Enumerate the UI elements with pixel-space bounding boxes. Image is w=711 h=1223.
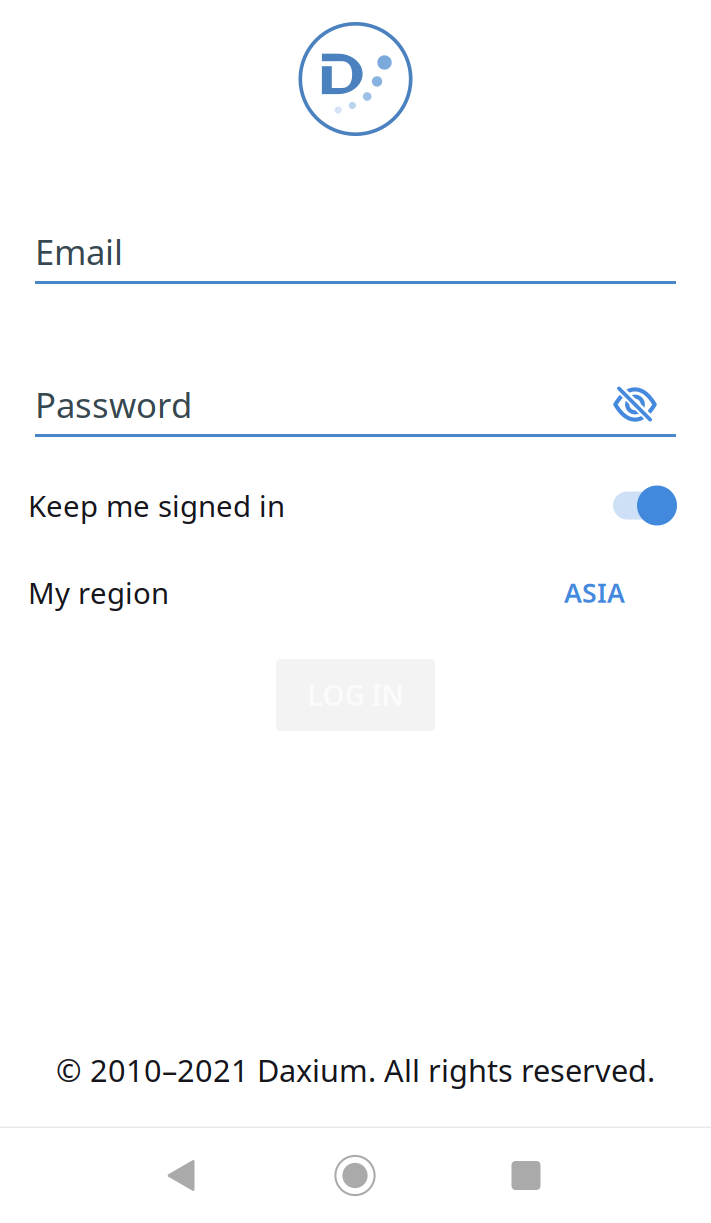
button[interactable]: Back xyxy=(123,1128,239,1222)
staticText: LOG IN xyxy=(307,676,403,714)
staticText: ASIA xyxy=(564,575,625,610)
staticText: © 2010–2021 Daxium. All rights reserved. xyxy=(56,1050,655,1090)
staticText: My region xyxy=(28,573,169,612)
button[interactable]: Show password xyxy=(601,382,676,426)
staticText: Email xyxy=(35,228,123,274)
staticText: Password xyxy=(35,381,192,427)
button[interactable]: My region xyxy=(0,549,711,636)
button[interactable]: Recent apps xyxy=(468,1128,584,1222)
staticText: Keep me signed in xyxy=(28,486,285,525)
button[interactable]: Keep me signed in xyxy=(0,462,711,549)
button[interactable]: Home xyxy=(297,1128,413,1222)
